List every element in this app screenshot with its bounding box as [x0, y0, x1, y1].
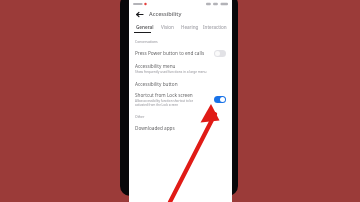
button[interactable]: Accessibility button [129, 77, 232, 90]
button[interactable]: Toggle [214, 50, 226, 57]
button[interactable]: Toggle [214, 96, 226, 103]
staticText: Conversations [135, 39, 158, 44]
staticText: Allow accessibility function shortcut to… [135, 99, 194, 107]
staticText: General [136, 24, 154, 30]
staticText: Downloaded apps [135, 125, 175, 131]
staticText: Accessibility menu [135, 63, 176, 69]
button[interactable]: Shortcut from Lock screen [129, 90, 232, 109]
staticText: Press Power button to end calls [135, 50, 205, 56]
staticText: Accessibility button [135, 81, 178, 87]
button[interactable]: General [133, 21, 156, 32]
staticText: Hearing [181, 24, 199, 30]
button[interactable]: Hearing [178, 21, 201, 32]
staticText: Vision [161, 24, 174, 30]
staticText: Interaction [203, 24, 227, 30]
staticText: Accessibility [149, 10, 182, 18]
button[interactable]: Downloaded apps [129, 121, 232, 134]
button[interactable]: Interaction [201, 21, 229, 32]
button[interactable]: Vision [156, 21, 178, 32]
button[interactable]: Back [134, 9, 145, 20]
staticText: Shortcut from Lock screen [135, 92, 193, 98]
button[interactable]: Accessibility menu [129, 60, 232, 77]
staticText: Show frequently used functions in a larg… [135, 70, 207, 74]
staticText: Other [135, 114, 145, 119]
button[interactable]: Press Power button to end calls [129, 46, 232, 60]
